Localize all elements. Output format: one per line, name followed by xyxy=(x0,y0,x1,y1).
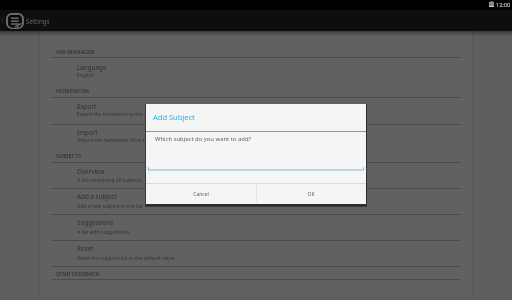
staticText: Language xyxy=(77,63,107,72)
button[interactable] xyxy=(39,57,473,84)
staticText: HW-MANAGER xyxy=(56,48,95,56)
staticText: Import the homework from the SD xyxy=(77,137,159,144)
button[interactable] xyxy=(39,214,473,240)
button[interactable] xyxy=(39,240,473,266)
staticText: Add a new subject to the list xyxy=(77,203,143,210)
staticText: Reset xyxy=(77,244,94,253)
staticText: 12:00 xyxy=(496,1,511,8)
staticText: Which subject do you want to add? xyxy=(155,135,252,143)
staticText: Import xyxy=(77,128,98,137)
staticText: English xyxy=(77,72,95,79)
staticText: Export xyxy=(77,102,97,111)
staticText: Add Subject xyxy=(153,112,195,122)
staticText: Settings xyxy=(26,17,50,25)
staticText: Suggestions xyxy=(77,218,114,227)
button[interactable] xyxy=(39,188,473,214)
staticText: ... xyxy=(77,283,82,290)
staticText: Overview xyxy=(77,167,105,176)
staticText: A list with suggestions xyxy=(77,229,130,236)
staticText: Add a subject xyxy=(77,192,117,201)
button[interactable] xyxy=(39,124,473,149)
staticText: Export the homework to the SD xyxy=(77,111,151,118)
staticText: OK xyxy=(307,191,315,198)
staticText: Cancel xyxy=(193,191,209,198)
button[interactable]: Navigate up xyxy=(0,10,26,31)
button[interactable]: Cancel xyxy=(146,184,256,204)
staticText: Reset the subjects list to the default v… xyxy=(77,255,175,262)
staticText: HOMEWORK xyxy=(56,87,90,95)
button[interactable] xyxy=(39,162,473,188)
staticText: A list containing all subjects xyxy=(77,177,142,184)
staticText: SUBJECTS xyxy=(56,152,82,160)
button[interactable] xyxy=(39,97,473,124)
staticText: SEND FEEDBACK xyxy=(56,270,100,278)
button[interactable]: OK xyxy=(256,184,366,204)
